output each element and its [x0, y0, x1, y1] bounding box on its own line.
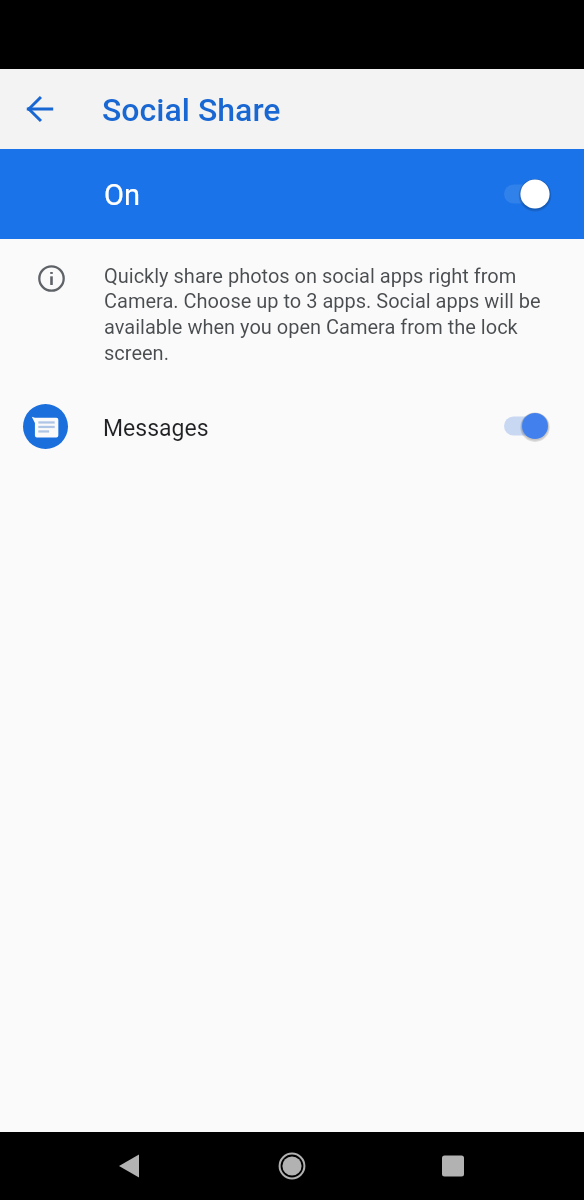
staticText: Quickly share photos on social apps righ… — [104, 264, 546, 365]
button[interactable]: Messages — [0, 396, 584, 476]
button[interactable]: Home — [261, 1135, 323, 1197]
button[interactable]: On — [0, 149, 584, 239]
button[interactable]: Recent apps — [422, 1135, 484, 1197]
button[interactable]: Back — [98, 1135, 160, 1197]
button[interactable]: Navigate up — [14, 83, 66, 135]
button[interactable]: Toggle — [504, 176, 548, 212]
staticText: Social Share — [102, 91, 281, 129]
staticText: On — [104, 178, 140, 212]
button[interactable]: Toggle — [504, 408, 548, 444]
staticText: Messages — [103, 415, 209, 442]
